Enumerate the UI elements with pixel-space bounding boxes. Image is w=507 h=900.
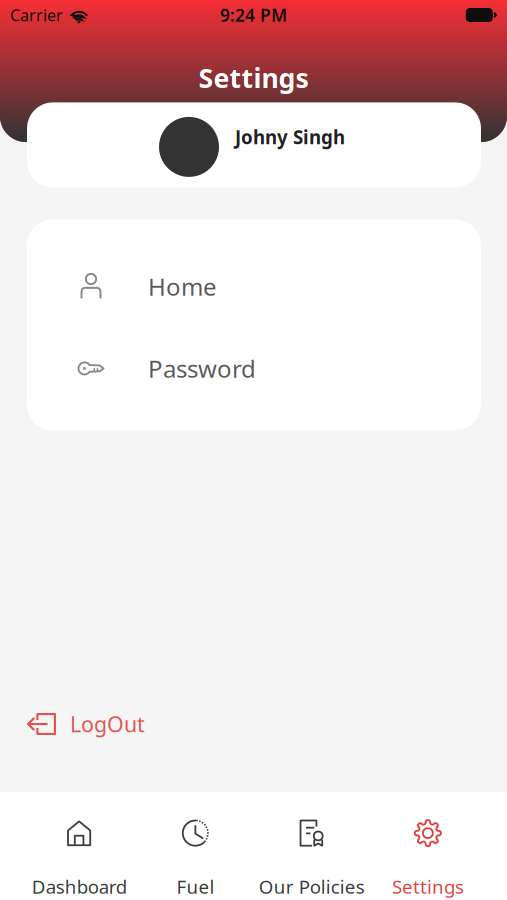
staticText: Fuel (176, 874, 214, 899)
staticText: Home (148, 270, 217, 302)
button[interactable]: Our Policies (253, 792, 370, 900)
staticText: Johny Singh (235, 124, 345, 149)
button[interactable]: Home (27, 245, 481, 327)
staticText: Dashboard (32, 874, 127, 899)
button[interactable]: Dashboard (21, 792, 137, 900)
staticText: Our Policies (259, 874, 365, 899)
staticText: 9:24 PM (220, 3, 287, 26)
button[interactable]: Fuel (137, 792, 253, 900)
button[interactable]: Settings (370, 792, 486, 900)
staticText: Password (148, 352, 256, 384)
staticText: Settings (392, 874, 464, 899)
staticText: Carrier (10, 4, 63, 26)
staticText: LogOut (70, 710, 145, 738)
button[interactable]: LogOut (0, 699, 507, 749)
staticText: Settings (198, 60, 308, 95)
button[interactable]: Password (27, 327, 481, 409)
